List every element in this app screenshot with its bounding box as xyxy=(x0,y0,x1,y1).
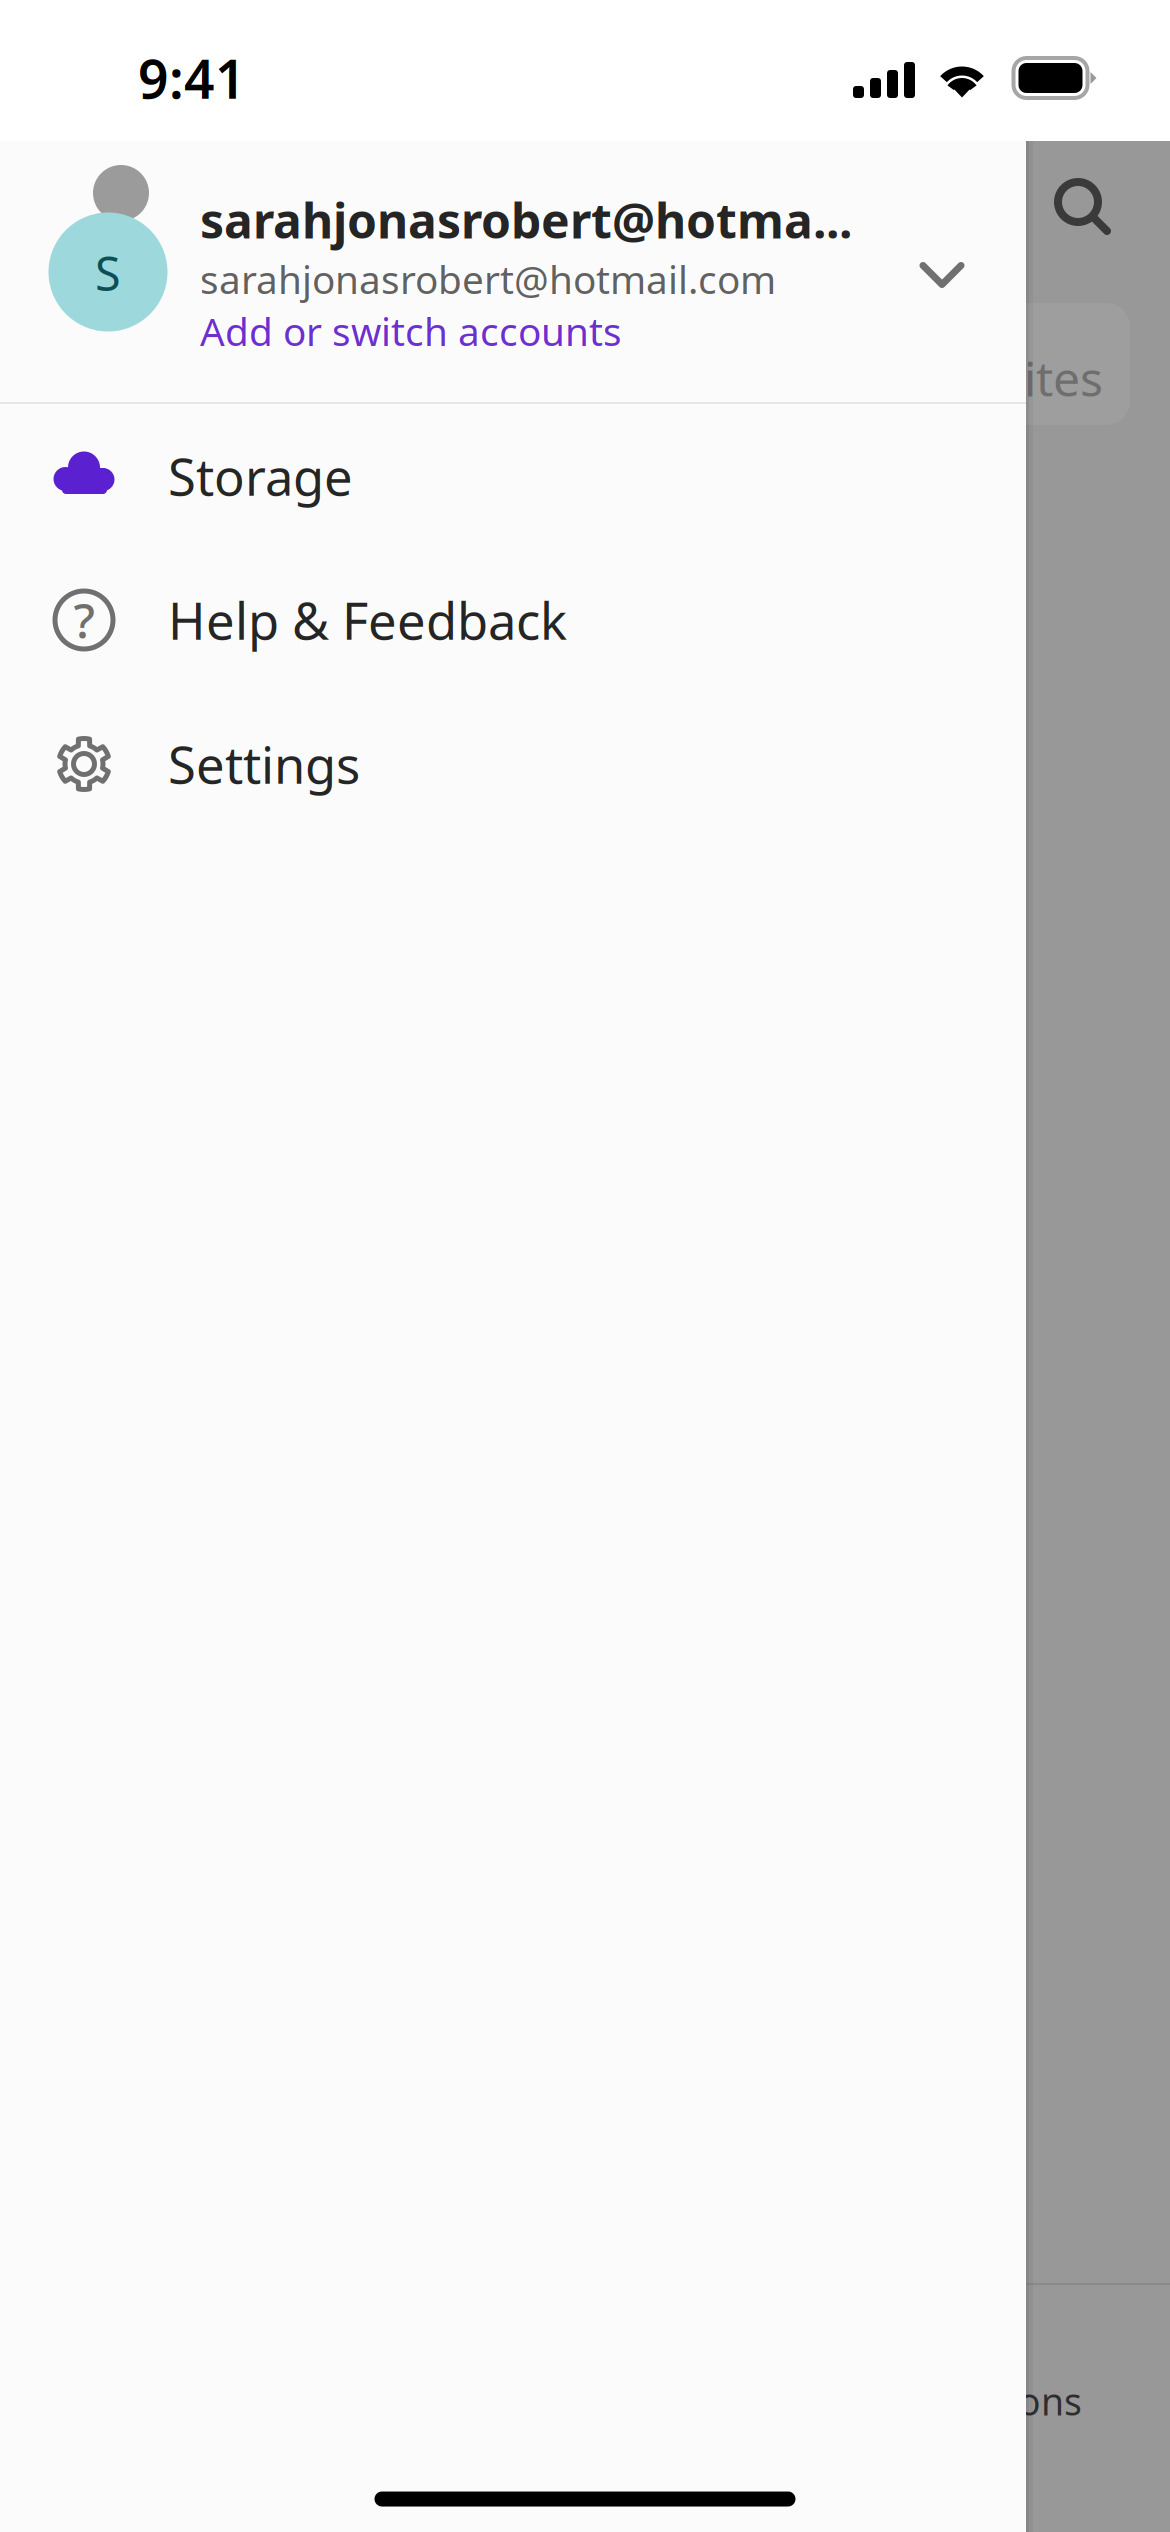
staticText: Actions xyxy=(953,2376,1082,2426)
button[interactable]: S xyxy=(0,141,1026,403)
staticText: Settings xyxy=(168,730,360,798)
staticText: S xyxy=(95,242,121,304)
button[interactable]: ? xyxy=(0,548,1026,692)
button[interactable]: Storage xyxy=(0,404,1026,548)
staticText: sarahjonasrobert@hotma... xyxy=(200,188,852,252)
staticText: sarahjonasrobert@hotmail.com xyxy=(200,253,776,305)
staticText: Add or switch accounts xyxy=(200,305,622,357)
staticText: Storage xyxy=(168,442,353,510)
button[interactable]: Actions xyxy=(892,2341,1082,2461)
staticText: Help & Feedback xyxy=(168,586,567,654)
button[interactable]: Search xyxy=(1034,158,1132,256)
staticText: 9:41 xyxy=(138,43,246,113)
staticText: ? xyxy=(73,588,94,652)
button[interactable]: Settings xyxy=(0,692,1026,836)
staticText: Favorites xyxy=(899,346,1103,410)
